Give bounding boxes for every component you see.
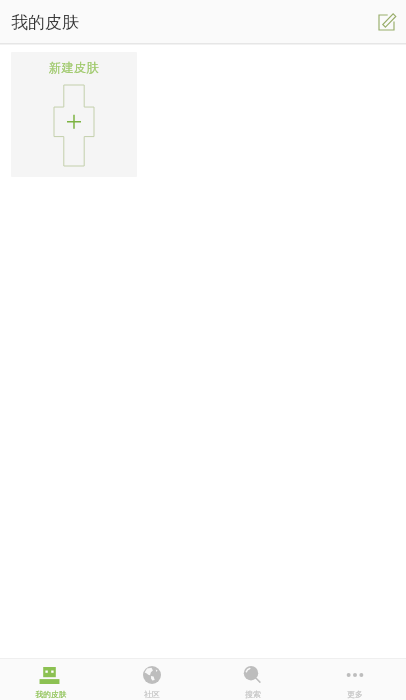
button[interactable]: 我的皮肤 [0, 659, 101, 700]
button[interactable]: 搜索 [202, 659, 304, 700]
staticText: 社区 [144, 689, 160, 699]
button[interactable]: Edit [370, 6, 402, 38]
staticText: 更多 [347, 689, 363, 699]
staticText: 新建皮肤 [49, 60, 99, 76]
button[interactable]: 社区 [101, 659, 202, 700]
button[interactable]: 更多 [304, 659, 406, 700]
staticText: 我的皮肤 [11, 12, 79, 33]
button[interactable]: 新建皮肤 [11, 52, 137, 177]
staticText: 我的皮肤 [35, 689, 67, 699]
staticText: 搜索 [245, 689, 261, 699]
